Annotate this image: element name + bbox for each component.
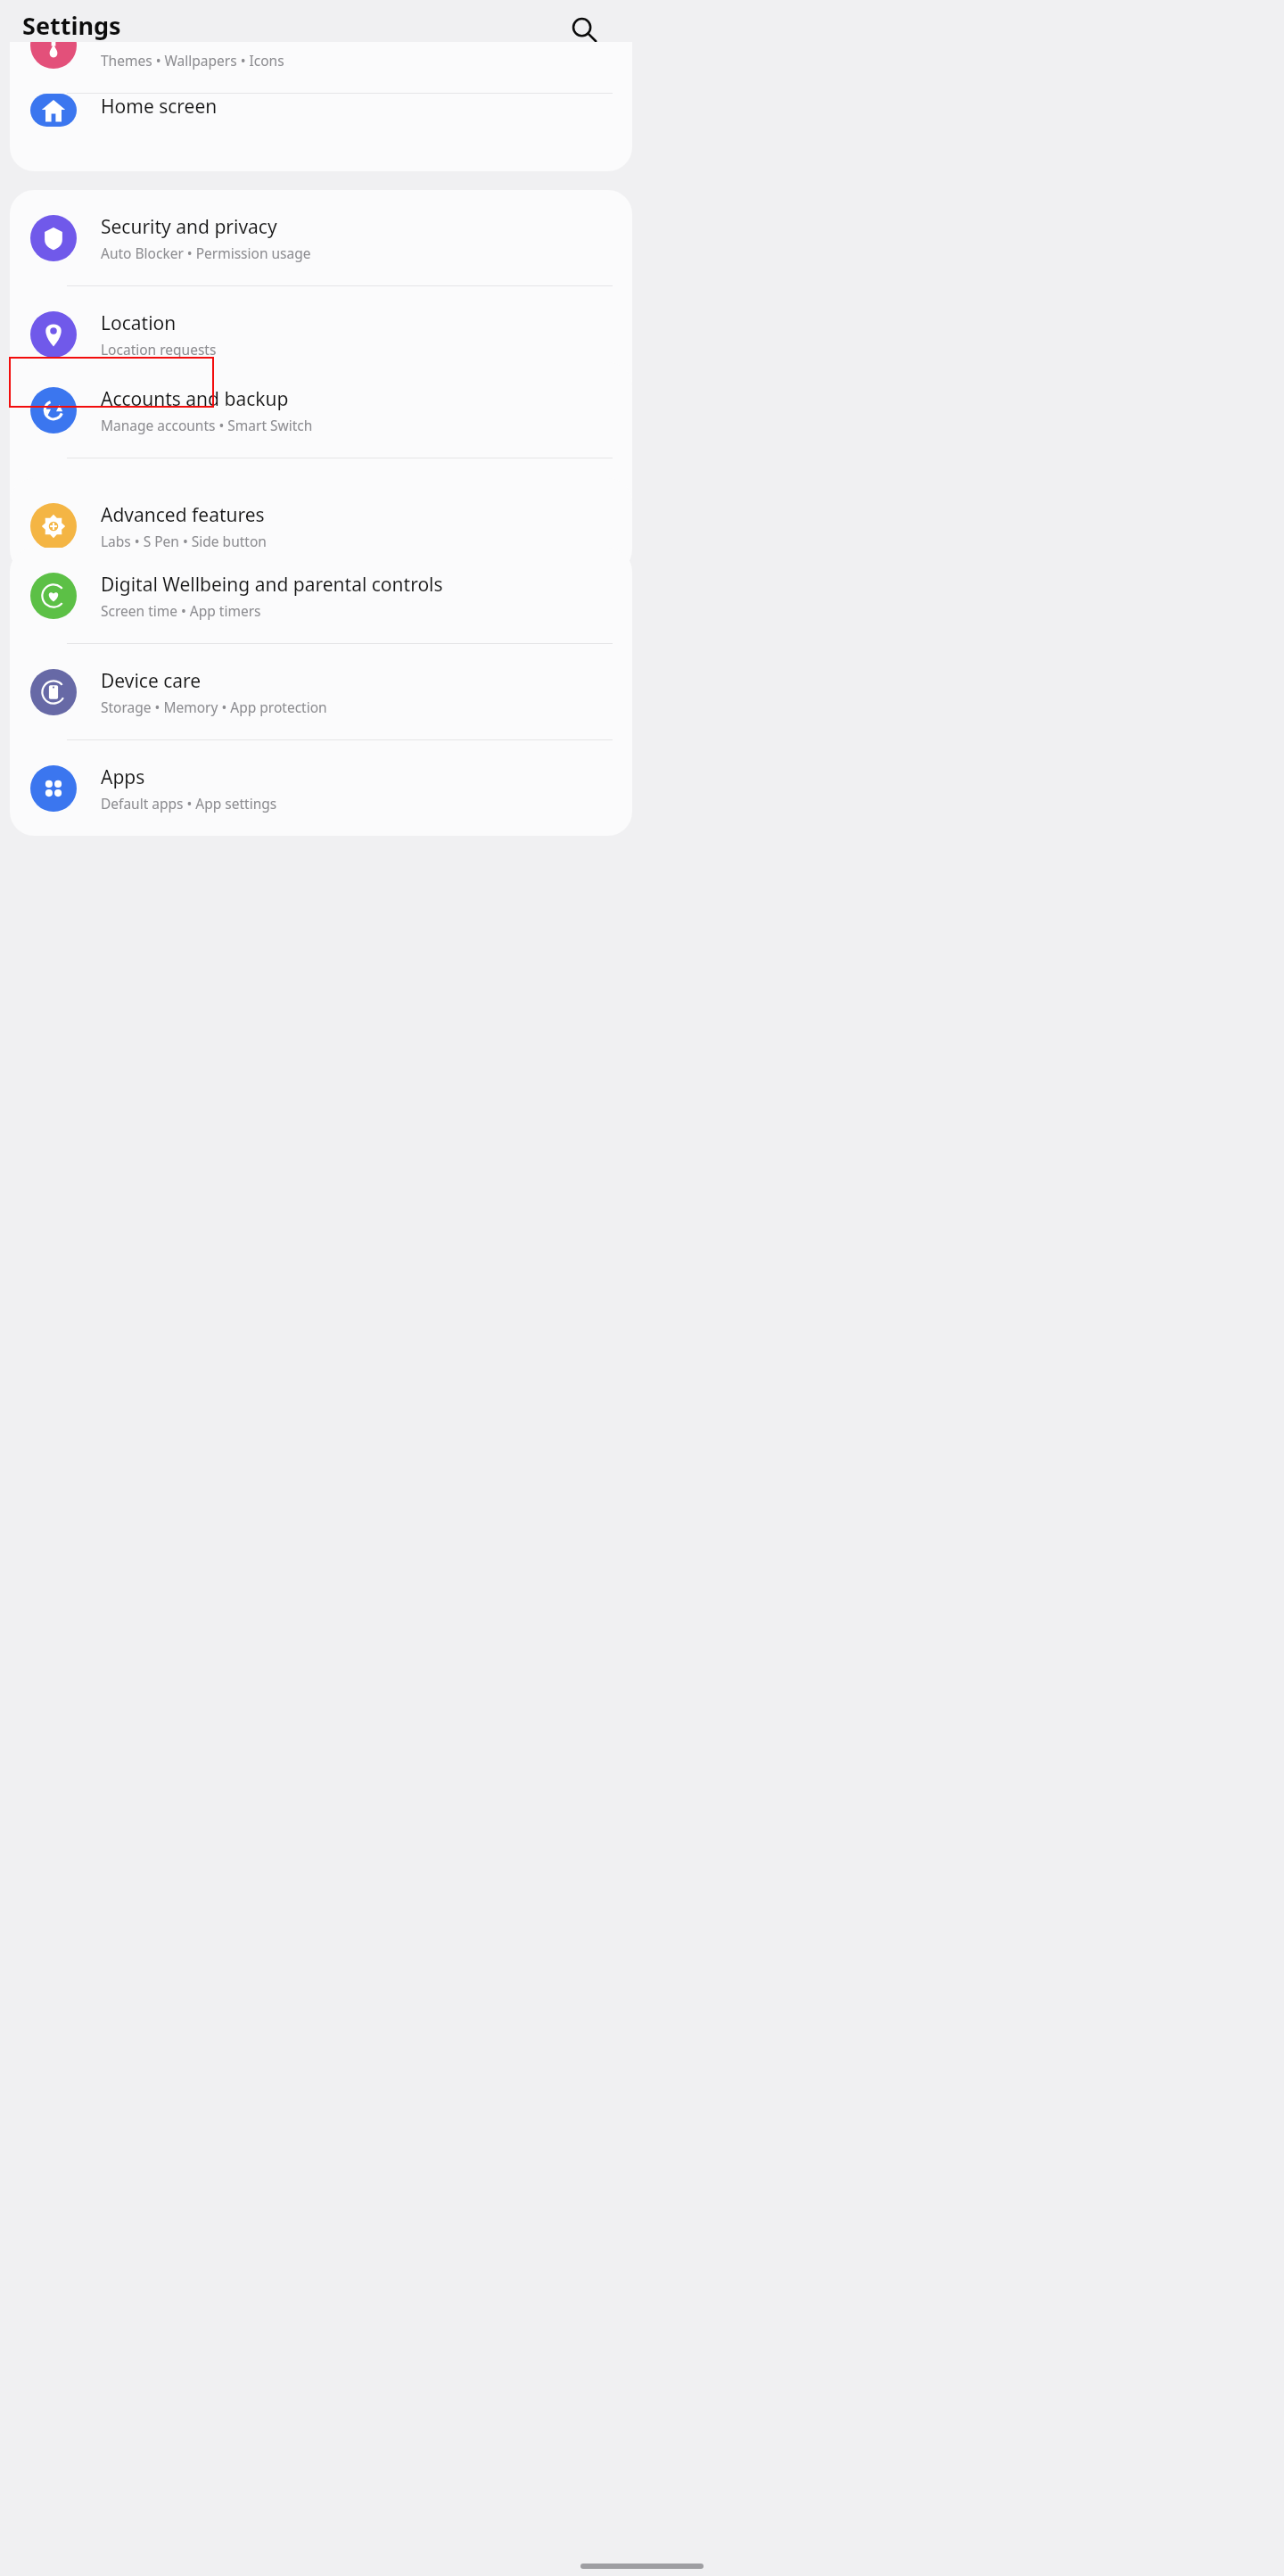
- staticText: Security and privacy: [101, 214, 277, 240]
- button[interactable]: Device care: [10, 644, 632, 739]
- staticText: Digital Wellbeing and parental controls: [101, 572, 443, 598]
- button[interactable]: Accounts and backup: [10, 362, 632, 458]
- button[interactable]: Digital Wellbeing and parental controls: [10, 548, 632, 643]
- staticText: Labs • S Pen • Side button: [101, 532, 267, 550]
- staticText: Manage accounts • Smart Switch: [101, 416, 313, 434]
- staticText: Home screen: [101, 94, 218, 120]
- button[interactable]: Search: [560, 5, 608, 54]
- staticText: Apps: [101, 764, 145, 790]
- button[interactable]: Advanced features: [10, 478, 632, 574]
- staticText: Accounts and backup: [101, 386, 289, 412]
- staticText: Auto Blocker • Permission usage: [101, 244, 311, 262]
- staticText: Settings: [22, 9, 121, 42]
- staticText: Device care: [101, 668, 202, 694]
- staticText: Location requests: [101, 340, 217, 359]
- staticText: Storage • Memory • App protection: [101, 698, 327, 716]
- button[interactable]: Safety and emergency: [10, 383, 632, 478]
- staticText: Default apps • App settings: [101, 794, 277, 813]
- staticText: Themes • Wallpapers • Icons: [101, 51, 284, 70]
- staticText: Location: [101, 310, 177, 336]
- staticText: Google services: [101, 512, 203, 531]
- button[interactable]: Security and privacy: [10, 190, 632, 285]
- button[interactable]: Home screen: [10, 94, 632, 127]
- staticText: Screen time • App timers: [101, 601, 261, 620]
- staticText: Safety and emergency: [101, 407, 297, 433]
- button[interactable]: Themes: [10, 42, 632, 93]
- button[interactable]: Apps: [10, 740, 632, 836]
- button[interactable]: Google: [10, 458, 632, 554]
- staticText: Advanced features: [101, 502, 265, 528]
- button[interactable]: Location: [10, 286, 632, 382]
